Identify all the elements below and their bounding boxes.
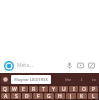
staticText: L — [92, 93, 95, 99]
button[interactable]: W — [10, 86, 18, 92]
button[interactable]: J — [66, 93, 76, 99]
button[interactable]: to — [92, 77, 96, 82]
button[interactable]: S — [11, 93, 21, 99]
staticText: P — [92, 86, 96, 92]
button[interactable]: Translate — [87, 61, 96, 70]
staticText: I — [73, 86, 75, 92]
staticText: O — [82, 86, 86, 92]
staticText: Y — [52, 86, 55, 92]
staticText: H — [58, 93, 62, 99]
button[interactable]: L — [88, 93, 98, 99]
button[interactable]: Voice search — [65, 61, 74, 70]
button[interactable]: R — [29, 86, 38, 92]
staticText: G — [47, 93, 51, 99]
staticText: Magnar LIEDERSK — [14, 77, 48, 82]
button[interactable]: U — [59, 86, 68, 92]
staticText: J — [70, 93, 72, 99]
staticText: E — [22, 86, 25, 92]
button[interactable]: F — [33, 93, 43, 99]
button[interactable]: Emoji — [1, 75, 10, 84]
button[interactable]: H — [55, 93, 65, 99]
staticText: T — [42, 86, 45, 92]
button[interactable]: E — [19, 86, 28, 92]
staticText: F — [37, 93, 40, 99]
staticText: A — [4, 93, 8, 99]
button[interactable]: T — [39, 86, 48, 92]
staticText: Q — [3, 86, 7, 92]
button[interactable]: Magnar LIEDERSK — [11, 75, 51, 84]
button[interactable]: G — [44, 93, 54, 99]
button[interactable]: I — [81, 77, 83, 82]
button[interactable]: Lens — [3, 60, 14, 71]
button[interactable]: Y — [49, 86, 58, 92]
button[interactable]: K — [77, 93, 87, 99]
staticText: Meta... — [17, 62, 65, 69]
button[interactable]: D — [22, 93, 32, 99]
button[interactable]: P — [89, 86, 98, 92]
staticText: R — [32, 86, 36, 92]
staticText: D — [25, 93, 29, 99]
button[interactable]: Q — [1, 86, 9, 92]
staticText: S — [15, 93, 18, 99]
staticText: K — [80, 93, 84, 99]
button[interactable]: Images — [76, 61, 85, 70]
button[interactable]: Lens — [0, 58, 99, 73]
button[interactable]: the — [65, 77, 72, 82]
button[interactable]: I — [69, 86, 78, 92]
button[interactable]: A — [1, 93, 10, 99]
staticText: W — [12, 86, 17, 92]
button[interactable]: O — [79, 86, 88, 92]
staticText: U — [62, 86, 66, 92]
